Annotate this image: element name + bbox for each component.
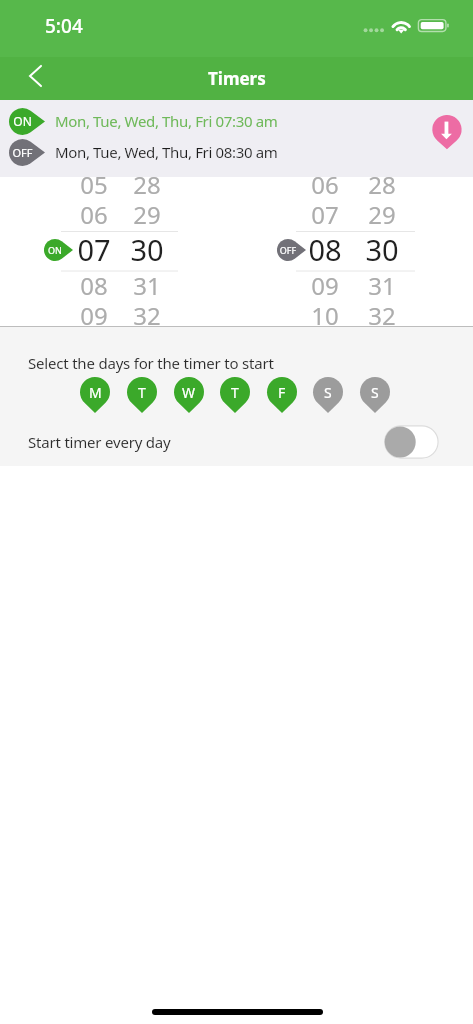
staticText: 32 [133,299,161,332]
button[interactable]: F [267,377,297,413]
staticText: Start timer every day [28,432,171,452]
staticText: T [138,383,146,402]
staticText: 09 [311,269,339,302]
staticText: 31 [368,269,396,302]
staticText: Mon, Tue, Wed, Thu, Fri 08:30 am [55,142,278,162]
staticText: 06 [311,168,339,201]
staticText: S [371,383,379,402]
staticText: W [182,383,196,402]
staticText: 29 [368,198,396,231]
staticText: OFF [9,145,36,160]
button[interactable]: ON [0,107,473,135]
staticText: 28 [133,168,161,201]
staticText: F [278,383,286,402]
button[interactable]: T [220,377,250,413]
button[interactable]: Back [18,62,46,90]
staticText: Select the days for the timer to start [28,353,274,373]
staticText: Timers [208,67,266,90]
staticText: M [89,383,102,402]
staticText: ON [9,113,36,129]
staticText: 08 [308,230,342,266]
staticText: 06 [80,198,108,231]
button[interactable]: Start timer every day [384,425,439,459]
staticText: 05 [80,168,108,201]
button[interactable]: M [80,377,110,413]
button[interactable]: S [313,377,343,413]
staticText: 07 [77,230,111,266]
staticText: ON [44,244,66,256]
button[interactable]: S [360,377,390,413]
button[interactable]: OFF [277,239,306,261]
staticText: 31 [133,269,161,302]
staticText: 30 [365,230,399,266]
staticText: 5:04 [45,13,83,39]
button[interactable]: W [174,377,204,413]
staticText: OFF [277,244,299,256]
staticText: 30 [130,230,164,266]
button[interactable]: Download [426,110,467,155]
button[interactable]: OFF [0,138,473,166]
button[interactable]: ON [44,239,73,261]
staticText: 32 [368,299,396,332]
staticText: 10 [311,299,339,332]
staticText: 29 [133,198,161,231]
staticText: 08 [80,269,108,302]
staticText: Mon, Tue, Wed, Thu, Fri 07:30 am [55,111,278,131]
staticText: 07 [311,198,339,231]
staticText: T [231,383,239,402]
staticText: S [324,383,332,402]
staticText: 09 [80,299,108,332]
staticText: 28 [368,168,396,201]
button[interactable]: T [127,377,157,413]
